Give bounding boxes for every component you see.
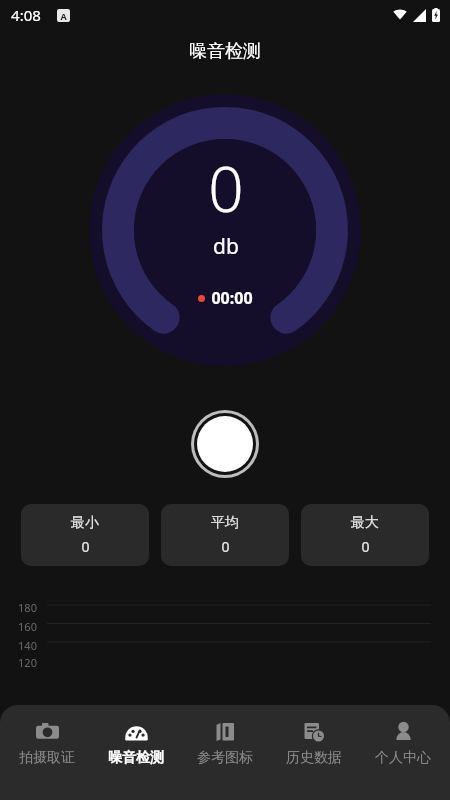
staticText: 噪音检测 — [108, 749, 164, 767]
staticText: 140 — [18, 638, 37, 653]
button[interactable]: 平均 — [161, 504, 289, 566]
staticText: 拍摄取证 — [19, 749, 75, 767]
staticText: 120 — [18, 655, 37, 668]
button[interactable]: 最大 — [301, 504, 429, 566]
button[interactable]: 拍摄取证 — [5, 715, 89, 771]
button[interactable]: 噪音检测 — [94, 715, 178, 771]
staticText: 4:08 — [11, 5, 41, 25]
staticText: db — [213, 232, 239, 261]
button[interactable]: 参考图标 — [183, 715, 267, 771]
button[interactable]: 最小 — [21, 504, 149, 566]
staticText: 最大 — [351, 514, 379, 532]
staticText: A — [60, 10, 67, 22]
staticText: 160 — [18, 619, 37, 634]
staticText: 平均 — [211, 514, 239, 532]
staticText: 个人中心 — [375, 749, 431, 767]
staticText: 0 — [81, 537, 90, 556]
staticText: 最小 — [71, 514, 99, 532]
staticText: 0 — [361, 537, 370, 556]
button[interactable]: Start recording — [191, 410, 259, 478]
staticText: 噪音检测 — [189, 40, 261, 63]
staticText: 历史数据 — [286, 749, 342, 767]
button[interactable]: 个人中心 — [361, 715, 445, 771]
staticText: 180 — [18, 600, 37, 615]
button[interactable]: 历史数据 — [272, 715, 356, 771]
staticText: 0 — [221, 537, 230, 556]
staticText: 参考图标 — [197, 749, 253, 767]
staticText: 00:00 — [211, 287, 253, 309]
staticText: 0 — [208, 146, 244, 230]
